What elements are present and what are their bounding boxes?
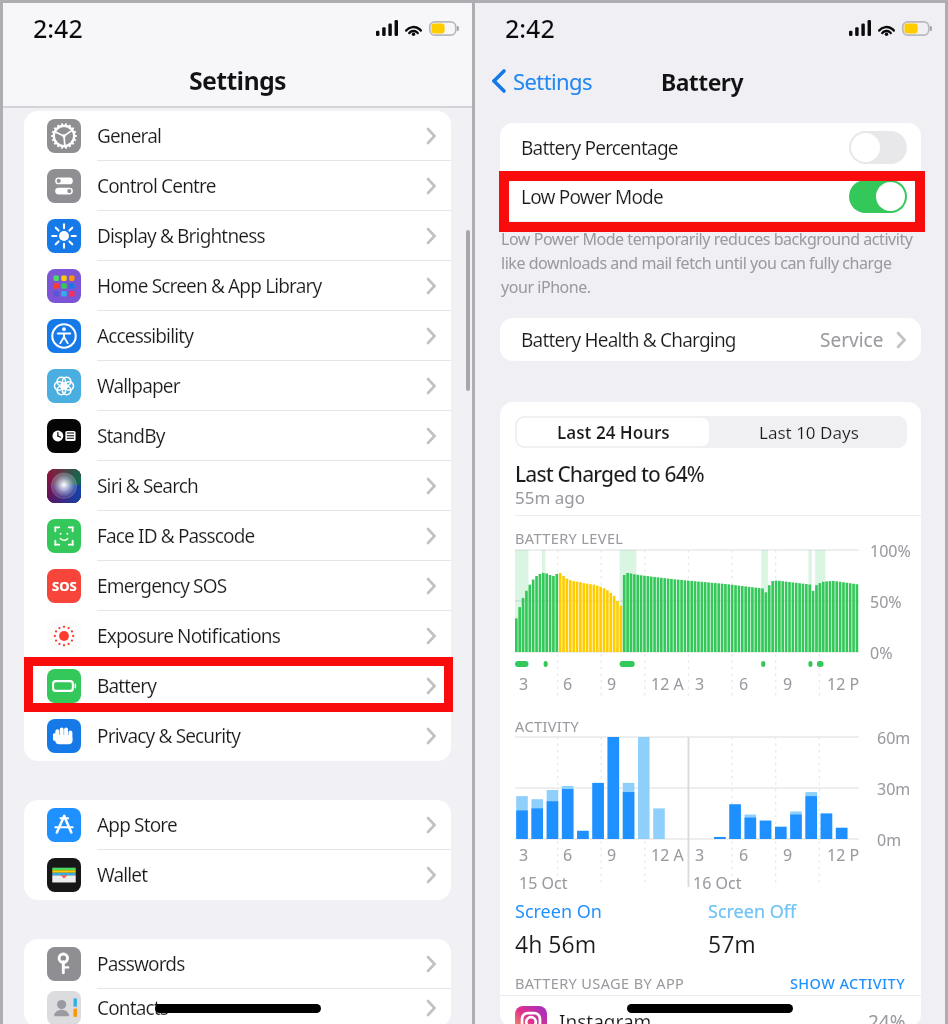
staticText: 9: [783, 673, 793, 695]
button[interactable]: Battery Health & Charging: [500, 318, 921, 361]
staticText: 0%: [870, 642, 893, 664]
staticText: 9: [607, 844, 617, 866]
staticText: Wallet: [97, 862, 426, 888]
staticText: Screen Off: [708, 899, 797, 924]
staticText: Battery Health & Charging: [521, 327, 820, 353]
staticText: SHOW ACTIVITY: [790, 973, 906, 993]
staticText: 3: [519, 844, 529, 866]
staticText: Last 10 Days: [759, 421, 859, 444]
button[interactable]: Control Centre: [24, 161, 451, 211]
staticText: Face ID & Passcode: [97, 523, 426, 549]
staticText: 2:42: [33, 11, 83, 45]
staticText: 9: [783, 844, 793, 866]
button[interactable]: Face ID & Passcode: [24, 511, 451, 561]
staticText: 60m: [877, 727, 911, 749]
staticText: Privacy & Security: [97, 723, 426, 749]
staticText: 55m ago: [515, 486, 586, 509]
staticText: 6: [739, 844, 749, 866]
staticText: 3: [519, 673, 529, 695]
staticText: 15 Oct: [519, 872, 568, 894]
staticText: 30m: [877, 778, 911, 800]
staticText: 3: [695, 673, 705, 695]
button[interactable]: StandBy: [24, 411, 451, 461]
button[interactable]: Wallet: [24, 850, 451, 900]
button[interactable]: Home Screen & App Library: [24, 261, 451, 311]
staticText: 57m: [708, 928, 756, 959]
staticText: Last 24 Hours: [557, 421, 670, 444]
button[interactable]: Accessibility: [24, 311, 451, 361]
button[interactable]: Display & Brightness: [24, 211, 451, 261]
staticText: Display & Brightness: [97, 223, 426, 249]
staticText: 2:42: [505, 11, 555, 45]
staticText: SOS: [52, 577, 77, 595]
staticText: Last Charged to 64%: [515, 460, 704, 489]
button[interactable]: Last 10 Days: [711, 416, 907, 448]
staticText: 12 A: [651, 844, 684, 866]
staticText: 16 Oct: [693, 872, 742, 894]
staticText: 12 A: [651, 673, 684, 695]
button[interactable]: SOS: [24, 561, 451, 611]
staticText: Instagram: [559, 1009, 652, 1024]
staticText: 0m: [877, 829, 902, 851]
staticText: 100%: [870, 540, 911, 562]
staticText: Low Power Mode temporarily reduces backg…: [501, 228, 945, 298]
staticText: Contacts: [97, 995, 426, 1021]
button[interactable]: Contacts: [24, 989, 451, 1024]
button[interactable]: App Store: [24, 800, 451, 850]
staticText: App Store: [97, 812, 426, 838]
staticText: Siri & Search: [97, 473, 426, 499]
staticText: StandBy: [97, 423, 426, 449]
button[interactable]: Siri & Search: [24, 461, 451, 511]
button[interactable]: Privacy & Security: [24, 711, 451, 761]
staticText: 3: [695, 844, 705, 866]
staticText: 6: [563, 673, 573, 695]
staticText: Exposure Notifications: [97, 623, 426, 649]
button[interactable]: Settings: [488, 62, 596, 100]
staticText: BATTERY LEVEL: [515, 528, 624, 548]
button[interactable]: Passwords: [24, 939, 451, 989]
staticText: Service: [820, 327, 884, 353]
staticText: Home Screen & App Library: [97, 273, 426, 299]
staticText: 24%: [868, 1009, 906, 1024]
button[interactable]: Battery: [24, 661, 451, 711]
button[interactable]: Exposure Notifications: [24, 611, 451, 661]
staticText: General: [97, 123, 426, 149]
staticText: 4h 56m: [515, 928, 597, 959]
staticText: 6: [739, 673, 749, 695]
button[interactable]: Low Power Mode: [521, 172, 907, 221]
button[interactable]: Last 24 Hours: [517, 418, 709, 446]
staticText: Wallpaper: [97, 373, 426, 399]
staticText: BATTERY USAGE BY APP: [515, 973, 685, 993]
button[interactable]: Wallpaper: [24, 361, 451, 411]
staticText: Emergency SOS: [97, 573, 426, 599]
staticText: Battery: [661, 66, 743, 97]
staticText: Low Power Mode: [521, 184, 849, 210]
button[interactable]: Battery Percentage: [521, 123, 907, 172]
staticText: 12 P: [827, 673, 860, 695]
staticText: ACTIVITY: [515, 716, 580, 736]
staticText: 12 P: [827, 844, 860, 866]
staticText: Passwords: [97, 951, 426, 977]
staticText: Control Centre: [97, 173, 426, 199]
staticText: Battery Percentage: [521, 135, 849, 161]
staticText: Settings: [189, 63, 286, 97]
staticText: Settings: [513, 66, 592, 96]
button[interactable]: General: [24, 111, 451, 161]
staticText: Accessibility: [97, 323, 426, 349]
staticText: 50%: [870, 591, 902, 613]
staticText: 6: [563, 844, 573, 866]
staticText: Screen On: [515, 899, 602, 924]
staticText: Battery: [97, 673, 426, 699]
staticText: 9: [607, 673, 617, 695]
